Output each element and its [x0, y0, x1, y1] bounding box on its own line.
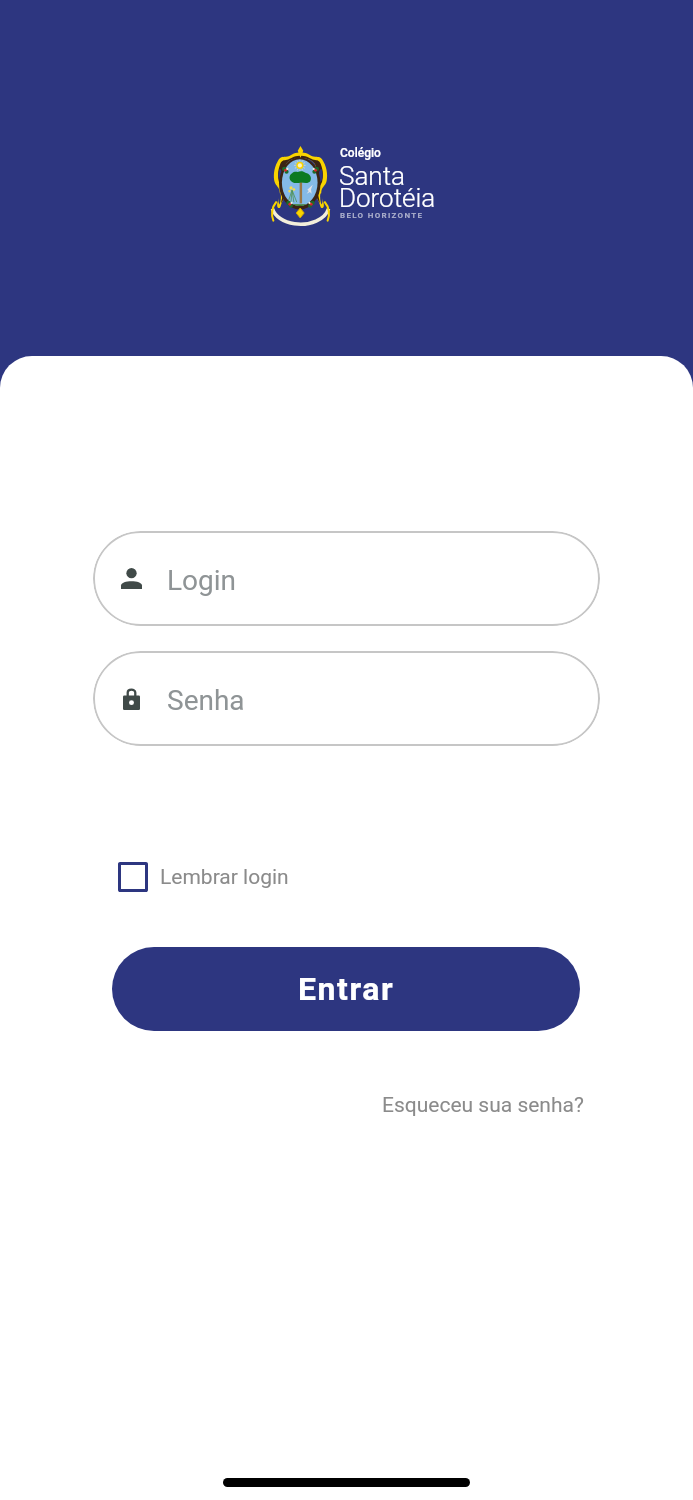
- other: User: [121, 568, 142, 589]
- button[interactable]: Senha (password) field: [93, 651, 600, 746]
- staticText: Santa: [339, 161, 405, 191]
- staticText: Colégio: [340, 146, 381, 160]
- staticText: Senha: [167, 684, 245, 717]
- staticText: Entrar: [298, 970, 395, 1008]
- button[interactable]: Lembrar login: [118, 862, 289, 892]
- button[interactable]: Esqueceu sua senha?: [382, 1093, 584, 1118]
- staticText: Esqueceu sua senha?: [382, 1093, 584, 1118]
- other: Colégio Santa Dorotéia crest: [270, 145, 331, 225]
- staticText: Lembrar login: [160, 865, 289, 890]
- button[interactable]: Entrar: [112, 947, 580, 1031]
- staticText: Login: [167, 564, 237, 597]
- staticText: Dorotéia: [339, 183, 436, 213]
- other: Password: [123, 688, 140, 710]
- staticText: BELO HORIZONTE: [340, 211, 424, 220]
- button[interactable]: Login field: [93, 531, 600, 626]
